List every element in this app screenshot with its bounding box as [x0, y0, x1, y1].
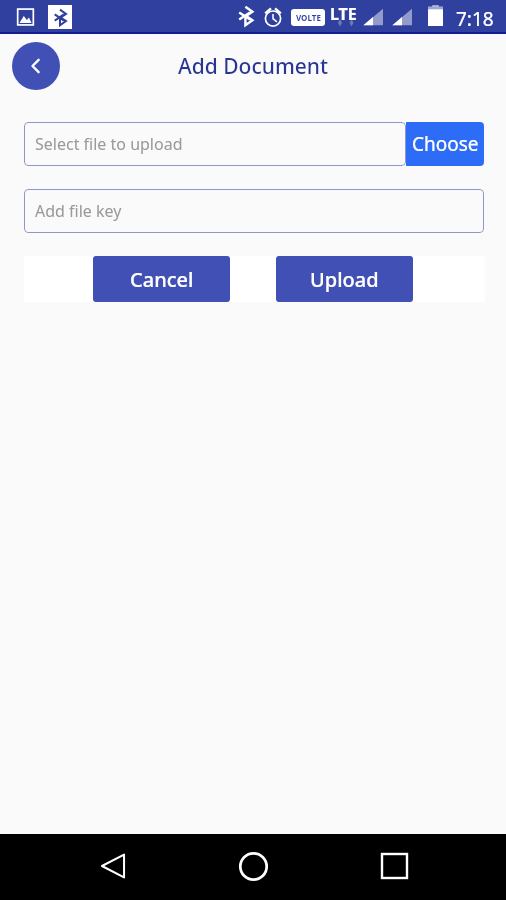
button[interactable]: Cancel	[93, 256, 230, 302]
staticText: Add file key	[35, 200, 122, 222]
staticText: Select file to upload	[35, 133, 183, 155]
staticText: Cancel	[130, 266, 194, 293]
staticText: LTE	[330, 3, 357, 25]
staticText: 7:18	[456, 6, 494, 32]
button[interactable]: Home	[211, 834, 295, 900]
button[interactable]: Back	[12, 42, 60, 90]
button[interactable]: Back	[71, 834, 155, 900]
staticText: Upload	[310, 266, 379, 293]
button[interactable]: Add file key	[24, 189, 484, 233]
button[interactable]: Upload	[276, 256, 413, 302]
staticText: Add Document	[178, 52, 329, 81]
button[interactable]: Choose	[406, 122, 484, 166]
staticText: Choose	[412, 131, 479, 157]
staticText: VOLTE	[296, 12, 321, 23]
button[interactable]: Select file to upload	[24, 122, 406, 166]
button[interactable]: Recent apps	[352, 834, 436, 900]
